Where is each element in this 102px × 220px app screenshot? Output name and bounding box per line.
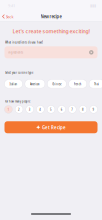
button[interactable]: Get Recipe xyxy=(4,121,97,133)
staticText: ▮▮▮ xyxy=(90,3,96,8)
button[interactable]: Back xyxy=(0,11,16,22)
button[interactable]: 8 xyxy=(79,105,87,113)
staticText: 9:41 xyxy=(8,3,15,8)
button[interactable]: 7 xyxy=(68,105,76,113)
staticText: Back xyxy=(5,14,13,19)
staticText: 6 xyxy=(61,107,63,112)
button[interactable]: 2 xyxy=(15,105,23,113)
staticText: Thai xyxy=(94,82,99,86)
button[interactable]: Chinese xyxy=(47,80,66,88)
staticText: 7 xyxy=(71,107,73,112)
staticText: ingredients xyxy=(8,50,23,55)
button[interactable]: 5 xyxy=(47,105,55,113)
staticText: 5 xyxy=(50,107,52,112)
staticText: 1 xyxy=(7,107,9,112)
staticText: American xyxy=(30,82,40,86)
staticText: What ingredients do you have? xyxy=(5,40,43,44)
button[interactable]: American xyxy=(25,80,45,88)
staticText: New recipe xyxy=(40,13,61,20)
button[interactable]: 4 xyxy=(36,105,44,113)
button[interactable]: 3 xyxy=(26,105,34,113)
button[interactable]: 1 xyxy=(4,105,12,113)
button[interactable]: 6 xyxy=(58,105,66,113)
staticText: Italian xyxy=(9,82,17,86)
staticText: 9 xyxy=(93,107,95,112)
button[interactable]: Thai xyxy=(89,80,102,88)
button[interactable]: 9 xyxy=(90,105,97,113)
staticText: Chinese xyxy=(52,82,61,86)
staticText: Get Recipe xyxy=(42,124,66,130)
button[interactable]: Clear text xyxy=(88,49,94,55)
staticText: 2 xyxy=(18,107,20,112)
staticText: Select your cuisine type xyxy=(5,70,33,75)
staticText: 8 xyxy=(82,107,84,112)
staticText: 4 xyxy=(39,107,41,112)
button[interactable]: Italian xyxy=(4,80,22,88)
staticText: Let's create something exciting! xyxy=(12,27,89,35)
button[interactable]: French xyxy=(69,80,87,88)
staticText: For how many people xyxy=(5,99,30,103)
staticText: 3 xyxy=(29,107,31,112)
staticText: French xyxy=(74,82,82,86)
